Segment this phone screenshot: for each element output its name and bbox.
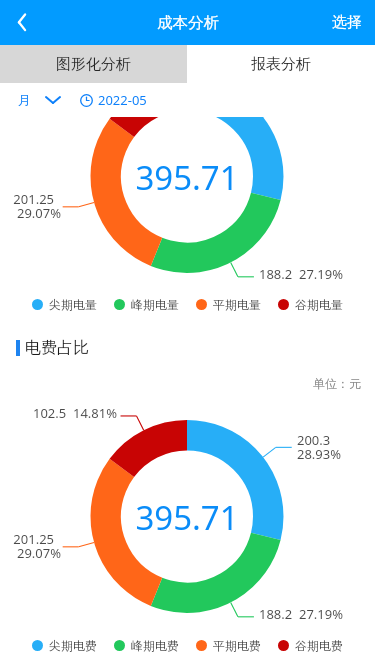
staticText: 201.25	[0, 530, 54, 548]
button[interactable]: 平期电费	[196, 638, 261, 653]
staticText: 395.71	[135, 495, 239, 540]
button[interactable]: Back	[0, 0, 42, 45]
staticText: 平期电量	[213, 297, 261, 312]
button[interactable]: 谷期电量	[278, 297, 343, 312]
staticText: 平期电费	[213, 638, 261, 653]
button[interactable]: 2022-05	[80, 91, 147, 109]
staticText: 28.93%	[297, 445, 375, 463]
staticText: 谷期电费	[295, 638, 343, 653]
staticText: 102.5 14.81%	[0, 404, 117, 422]
staticText: 峰期电量	[131, 297, 179, 312]
button[interactable]: 图形化分析	[0, 45, 187, 83]
staticText: 2022-05	[98, 91, 147, 109]
staticText: 谷期电量	[295, 297, 343, 312]
button[interactable]: 选择	[319, 0, 375, 45]
staticText: 188.2 27.19%	[259, 265, 375, 283]
staticText: 报表分析	[251, 55, 311, 74]
button[interactable]: 平期电量	[196, 297, 261, 312]
button[interactable]: 峰期电费	[114, 638, 179, 653]
staticText: 图形化分析	[56, 55, 131, 74]
button[interactable]: 峰期电量	[114, 297, 179, 312]
button[interactable]: 报表分析	[187, 45, 375, 83]
staticText: 29.07%	[0, 544, 61, 562]
staticText: 峰期电费	[131, 638, 179, 653]
staticText: 尖期电量	[49, 297, 97, 312]
staticText: 200.3	[297, 431, 375, 449]
staticText: 选择	[332, 13, 362, 32]
staticText: 29.07%	[0, 204, 61, 222]
staticText: 月	[18, 92, 31, 108]
staticText: 188.2 27.19%	[259, 605, 375, 623]
staticText: 单位：元	[313, 376, 361, 391]
staticText: 电费占比	[25, 338, 89, 358]
button[interactable]: 月	[18, 92, 61, 108]
button[interactable]: 尖期电费	[32, 638, 97, 653]
staticText: 201.25	[0, 190, 54, 208]
button[interactable]: 尖期电量	[32, 297, 97, 312]
button[interactable]: 谷期电费	[278, 638, 343, 653]
staticText: 尖期电费	[49, 638, 97, 653]
staticText: 成本分析	[157, 13, 219, 33]
staticText: 395.71	[135, 155, 239, 200]
